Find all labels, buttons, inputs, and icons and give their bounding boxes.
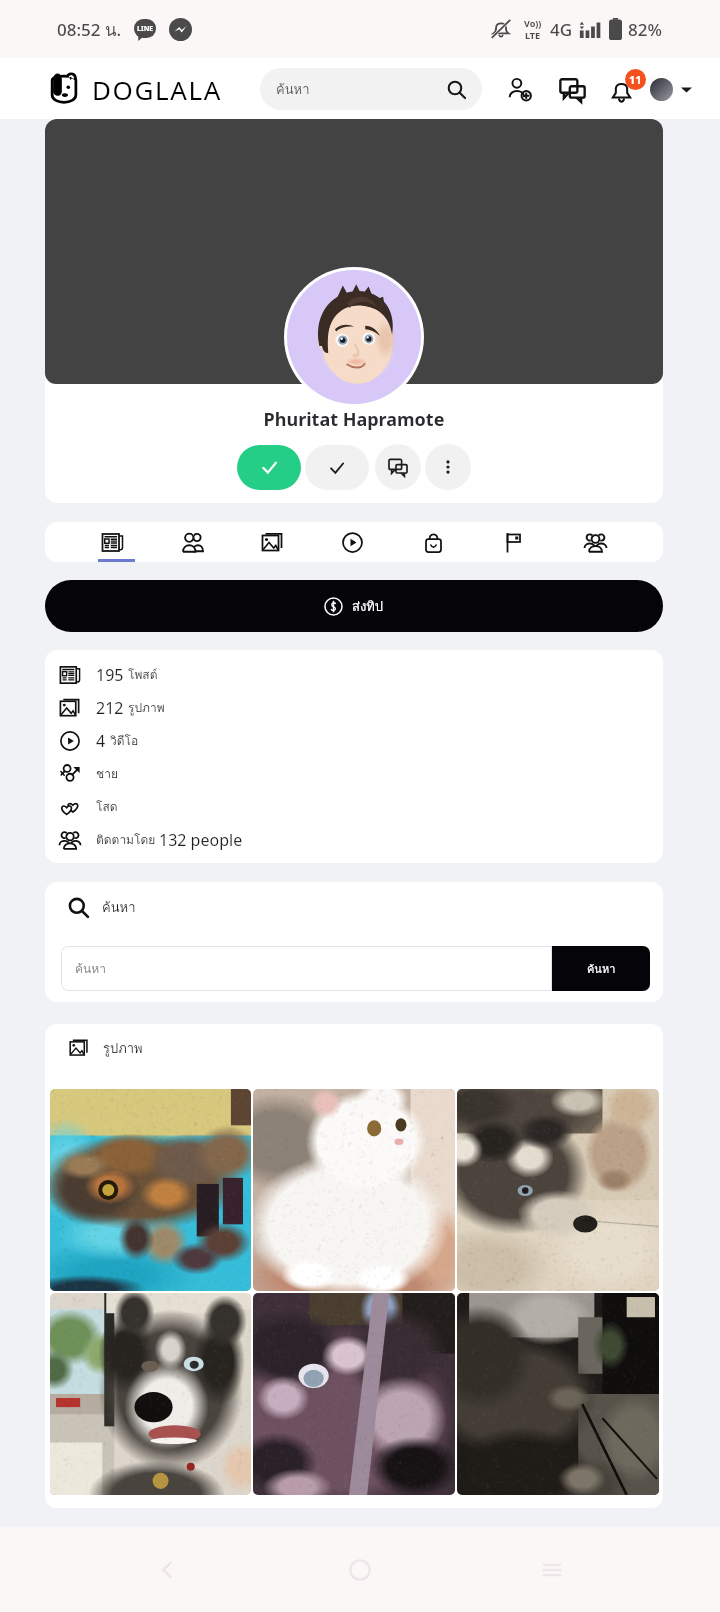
staticText: ส่งทิป: [352, 596, 384, 617]
staticText: LINE: [137, 24, 154, 34]
staticText: โสด: [96, 797, 118, 816]
button[interactable]: Shop: [393, 522, 474, 562]
button[interactable]: Recents: [528, 1546, 576, 1594]
button[interactable]: Friends: [305, 445, 369, 490]
button[interactable]: Profile menu: [650, 78, 692, 101]
staticText: ค้นหา: [102, 897, 136, 918]
staticText: วิดีโอ: [110, 731, 139, 750]
button[interactable]: 4: [45, 724, 663, 757]
button[interactable]: Groups: [555, 522, 636, 562]
button[interactable]: Home: [336, 1546, 384, 1594]
button[interactable]: Photo 5: [253, 1293, 455, 1495]
button[interactable]: ชาย: [45, 757, 663, 790]
staticText: 4: [96, 730, 110, 752]
button[interactable]: 195: [45, 658, 663, 691]
staticText: รูปภาพ: [128, 698, 165, 717]
staticText: ค้นหา: [75, 959, 106, 978]
button[interactable]: ส่งทิป: [45, 580, 663, 632]
button[interactable]: Photo 4: [50, 1293, 251, 1495]
button[interactable]: More options: [425, 444, 471, 490]
button[interactable]: Friends: [152, 522, 232, 562]
staticText: โพสต์: [128, 665, 158, 684]
button[interactable]: Following: [237, 445, 301, 490]
staticText: 82%: [628, 18, 662, 41]
button[interactable]: Videos: [312, 522, 393, 562]
button[interactable]: Photo 3: [457, 1089, 659, 1291]
button[interactable]: ค้นหา: [260, 68, 482, 110]
button[interactable]: Photos: [232, 522, 312, 562]
staticText: ค้นหา: [276, 79, 310, 100]
button[interactable]: Add friend: [503, 72, 537, 106]
staticText: ชาย: [96, 764, 118, 783]
staticText: ค้นหา: [587, 960, 616, 977]
button[interactable]: Posts: [72, 522, 152, 562]
button[interactable]: Notifications: [605, 69, 645, 109]
button[interactable]: ค้นหา: [552, 946, 650, 991]
button[interactable]: Pages: [474, 522, 555, 562]
staticText: Phuritat Hapramote: [45, 407, 663, 432]
button[interactable]: Photo 1: [50, 1089, 251, 1291]
staticText: รูปภาพ: [103, 1038, 143, 1059]
staticText: 11: [629, 72, 642, 87]
button[interactable]: Photo 2: [253, 1089, 455, 1291]
button[interactable]: Photo 6: [457, 1293, 659, 1495]
staticText: LTE: [525, 29, 541, 41]
button[interactable]: โสด: [45, 790, 663, 823]
staticText: 08:52 น.: [57, 16, 122, 43]
staticText: 4G: [550, 18, 573, 41]
staticText: 212: [96, 697, 128, 719]
staticText: ติดตามโดย: [96, 830, 159, 849]
staticText: 132 people: [159, 829, 243, 851]
button[interactable]: Message: [375, 444, 421, 490]
button[interactable]: 212: [45, 691, 663, 724]
button[interactable]: ติดตามโดย: [45, 823, 663, 856]
button[interactable]: Messages: [555, 72, 589, 106]
button[interactable]: ค้นหา: [61, 946, 552, 991]
staticText: DOGLALA: [92, 72, 222, 107]
staticText: Vo)): [524, 17, 542, 29]
staticText: 195: [96, 664, 128, 686]
